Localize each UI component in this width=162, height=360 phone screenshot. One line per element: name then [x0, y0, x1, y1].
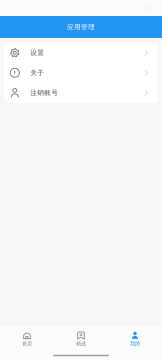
staticText: 精选 — [76, 340, 86, 347]
button[interactable]: 设置 — [4, 43, 158, 63]
button[interactable]: 精选 — [54, 332, 108, 347]
button[interactable]: 首页 — [0, 332, 54, 347]
staticText: 我的 — [130, 340, 140, 347]
staticText: 设置 — [30, 49, 44, 57]
staticText: 应用管理 — [67, 23, 95, 31]
staticText: 关于 — [30, 69, 44, 77]
button[interactable]: 我的 — [108, 332, 162, 347]
staticText: 首页 — [22, 340, 32, 347]
button[interactable]: 关于 — [4, 63, 158, 83]
staticText: 注销账号 — [30, 89, 58, 97]
button[interactable]: 注销账号 — [4, 83, 158, 103]
